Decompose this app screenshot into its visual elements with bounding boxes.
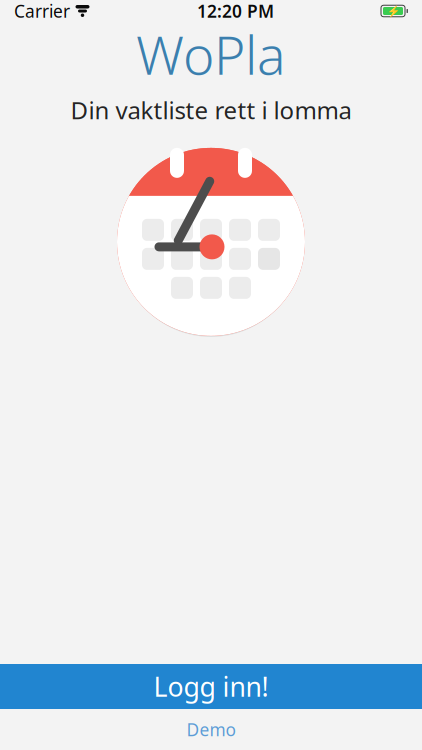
staticText: WoPla bbox=[136, 19, 286, 89]
staticText: Carrier bbox=[14, 0, 70, 22]
staticText: 12:20 PM bbox=[197, 0, 274, 22]
staticText: Logg inn! bbox=[153, 669, 268, 704]
staticText: ⚡ bbox=[386, 5, 399, 17]
button[interactable]: Demo bbox=[0, 709, 422, 750]
button[interactable]: Logg inn! bbox=[0, 664, 422, 709]
staticText: Din vaktliste rett i lomma bbox=[70, 94, 351, 126]
staticText: Demo bbox=[186, 718, 235, 741]
